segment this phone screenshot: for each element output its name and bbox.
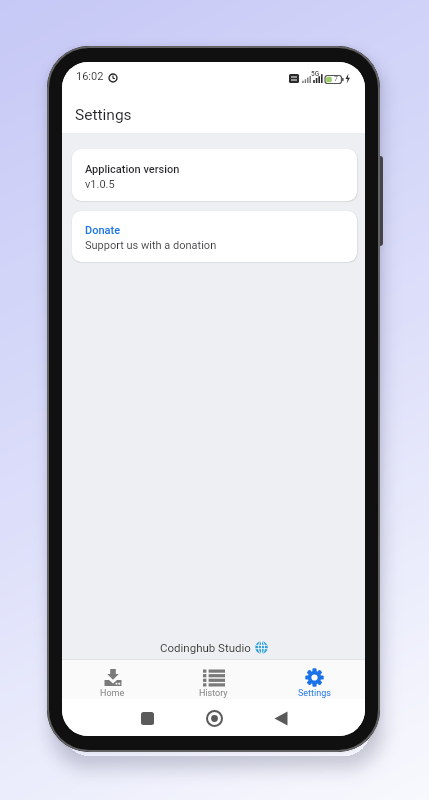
staticText: Codinghub Studio [160,641,251,654]
staticText: Application version [85,163,180,176]
staticText: 5G [311,70,320,78]
staticText: History [199,688,228,699]
button[interactable]: Home [62,660,163,699]
staticText: Support us with a donation [85,239,217,252]
button[interactable]: Donate [72,211,357,262]
button[interactable]: History [163,660,264,699]
staticText: Settings [298,688,331,699]
button[interactable] [264,699,365,736]
staticText: Settings [75,106,132,124]
staticText: 7 [334,75,338,83]
button[interactable]: Application version [72,149,357,201]
staticText: v1.0.5 [85,178,115,191]
staticText: Donate [85,224,121,237]
button[interactable] [163,699,264,736]
button[interactable] [62,699,163,736]
staticText: Home [100,688,125,699]
staticText: 16:02 [76,70,104,83]
button[interactable]: Settings [264,660,365,699]
